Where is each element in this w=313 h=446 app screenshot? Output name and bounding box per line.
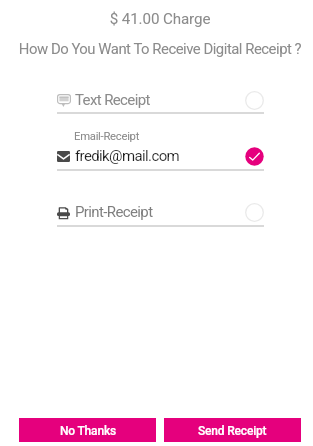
staticText: Print-Receipt [75,203,153,221]
staticText: fredik@mail.com [75,147,180,165]
button[interactable]: No Thanks [19,418,156,442]
button[interactable]: Send Receipt [164,418,301,442]
staticText: $ 41.00 Charge [7,10,313,28]
staticText: No Thanks [60,424,116,438]
staticText: Email-Receipt [74,130,140,143]
staticText: Send Receipt [198,424,267,438]
button[interactable]: Print receipt option [57,195,264,227]
button[interactable]: Email receipt option [57,139,264,171]
staticText: Text Receipt [75,91,150,109]
staticText: How Do You Want To Receive Digital Recei… [7,40,313,57]
button[interactable]: Text Receipt option [57,83,264,114]
